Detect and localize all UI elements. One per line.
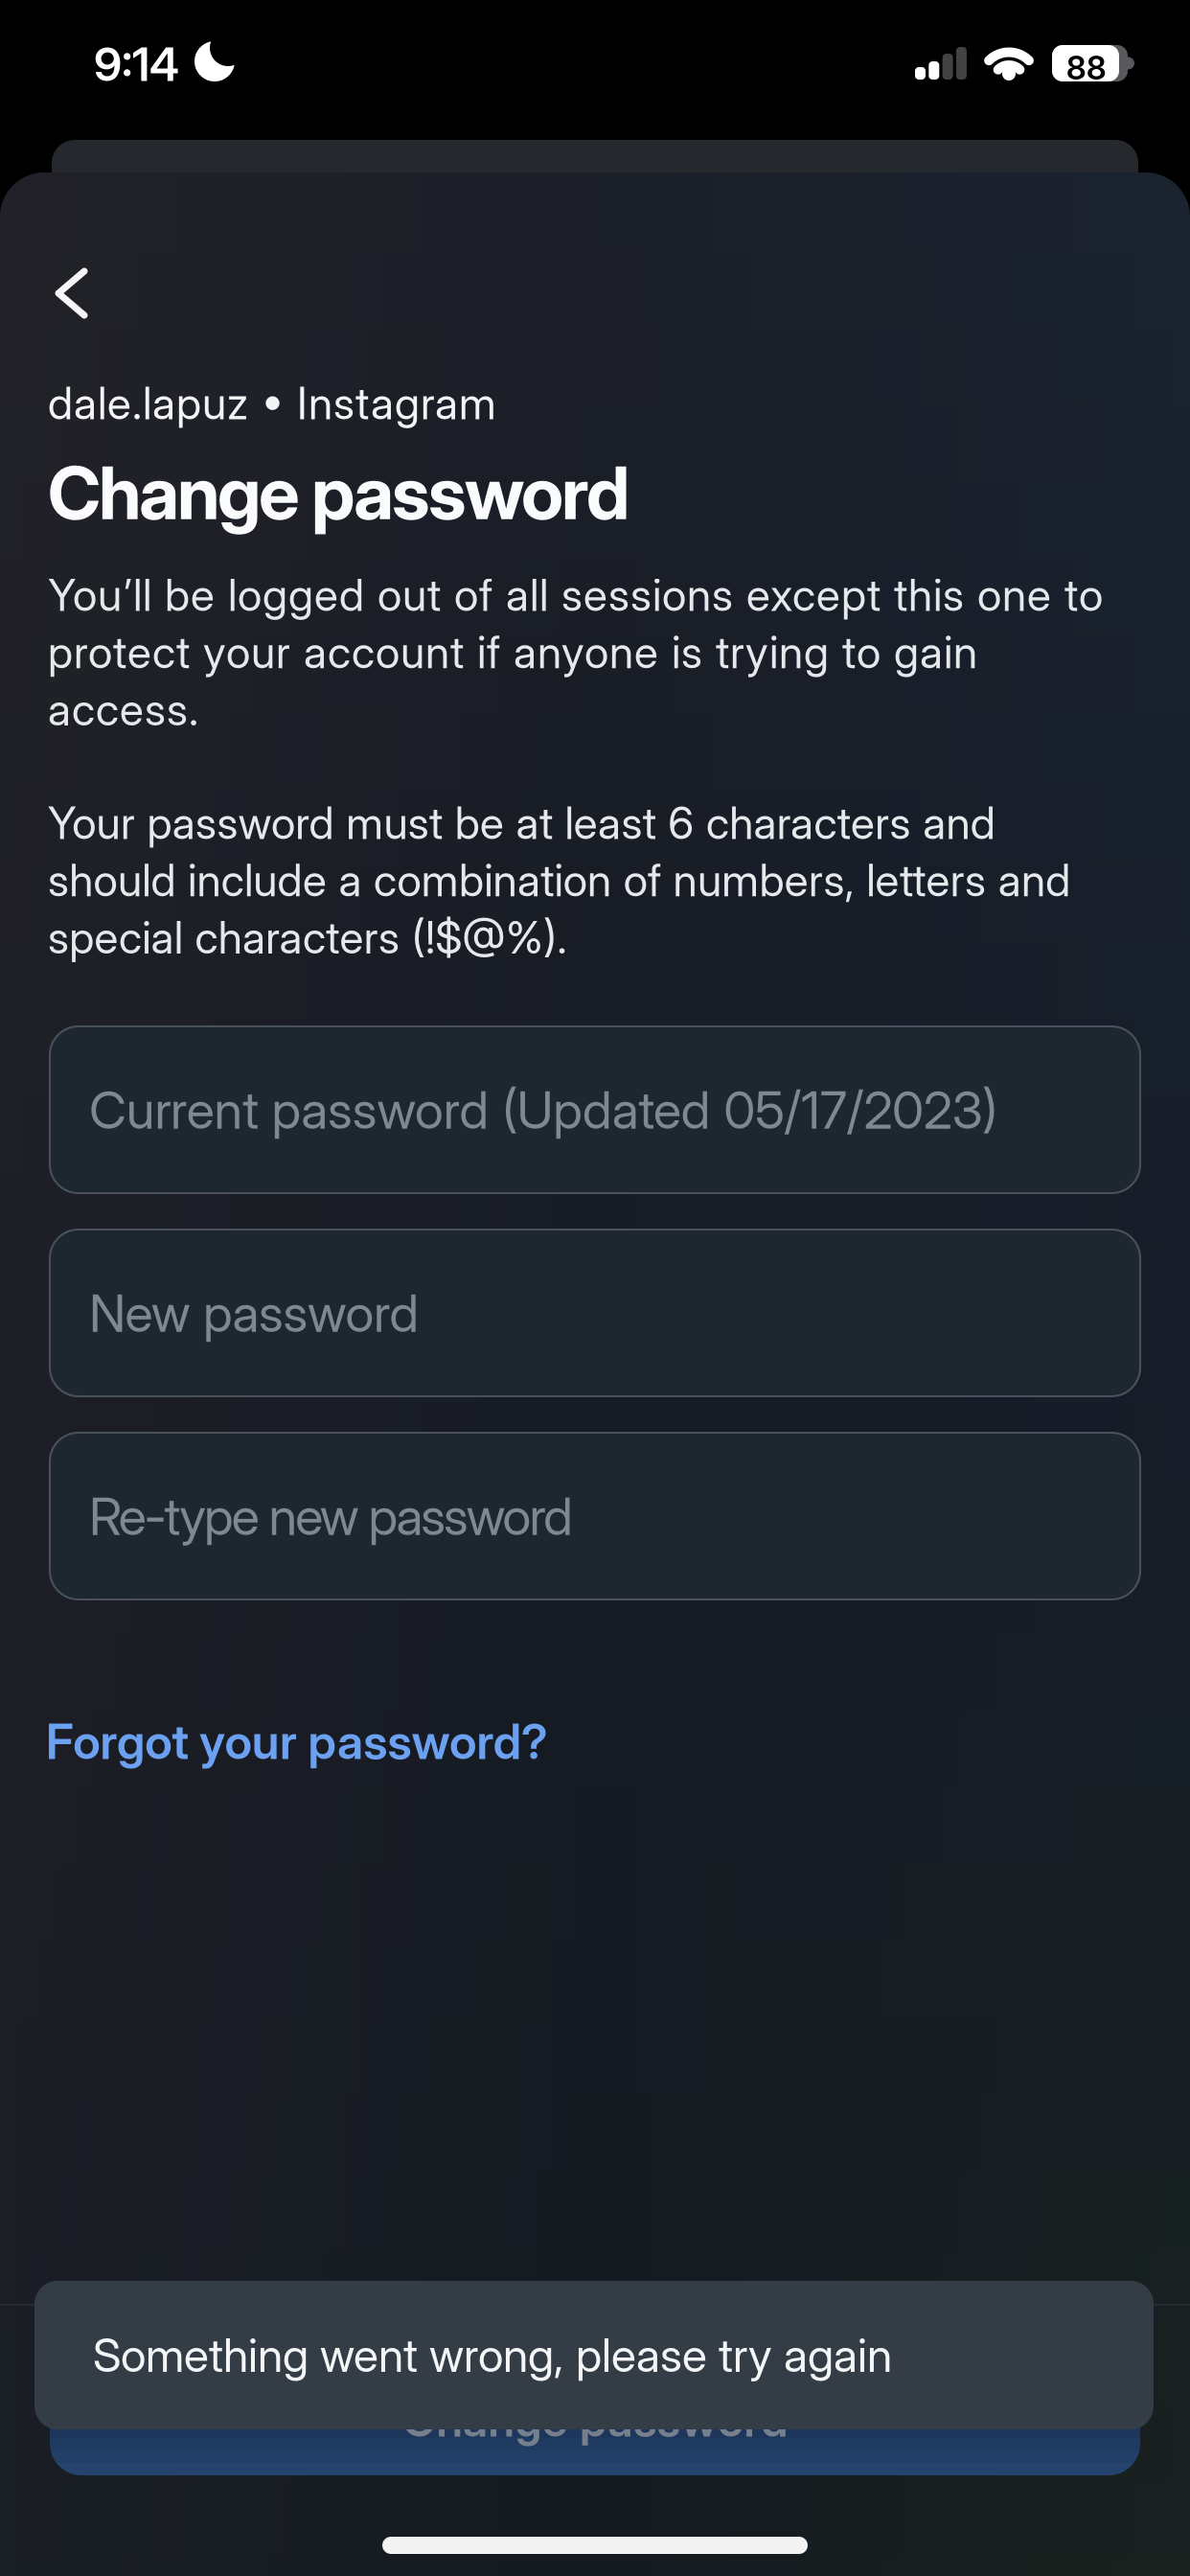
staticText: Change password bbox=[48, 448, 629, 537]
button[interactable]: Current password (Updated 05/17/2023) bbox=[49, 1025, 1141, 1194]
staticText: New password bbox=[89, 1282, 419, 1344]
button[interactable]: Forgot your password? bbox=[46, 1713, 548, 1771]
staticText: 9:14 bbox=[94, 36, 179, 92]
staticText: Re-type new password bbox=[89, 1485, 573, 1547]
staticText: Forgot your password? bbox=[46, 1713, 548, 1771]
button[interactable]: Change password bbox=[50, 2351, 1140, 2475]
button[interactable]: Re-type new password bbox=[49, 1432, 1141, 1600]
staticText: You’ll be logged out of all sessions exc… bbox=[48, 568, 1103, 736]
staticText: Change password bbox=[402, 2392, 788, 2448]
button[interactable] bbox=[19, 245, 115, 341]
staticText: Current password (Updated 05/17/2023) bbox=[89, 1078, 998, 1141]
staticText: dale.lapuz • Instagram bbox=[48, 377, 496, 430]
button[interactable]: New password bbox=[49, 1229, 1141, 1397]
staticText: 88 bbox=[1066, 48, 1107, 87]
staticText: Your password must be at least 6 charact… bbox=[48, 796, 1071, 964]
staticText: Something went wrong, please try again bbox=[93, 2327, 892, 2383]
